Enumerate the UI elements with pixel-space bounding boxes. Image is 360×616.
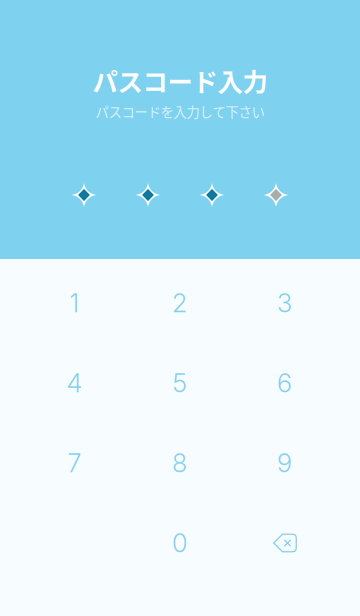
staticText: パスコード入力	[92, 62, 267, 99]
staticText: 4	[66, 368, 82, 398]
button[interactable]: 7	[22, 423, 127, 503]
staticText: 0	[172, 528, 187, 558]
button[interactable]: 4	[22, 343, 127, 423]
button[interactable]: 3	[232, 263, 337, 343]
button[interactable]: 6	[232, 343, 337, 423]
staticText: 2	[172, 288, 187, 318]
staticText: 5	[172, 368, 186, 398]
button[interactable]: 9	[232, 423, 337, 503]
staticText: 1	[69, 288, 79, 318]
button[interactable]: Delete	[232, 503, 337, 583]
button[interactable]: 0	[127, 503, 232, 583]
staticText: パスコードを入力して下さい	[95, 102, 264, 121]
staticText: 6	[277, 368, 292, 398]
staticText: 7	[67, 448, 81, 478]
button[interactable]: 1	[22, 263, 127, 343]
staticText: 9	[277, 448, 292, 478]
staticText: 8	[172, 448, 187, 478]
staticText: 3	[277, 288, 292, 318]
button[interactable]: 5	[127, 343, 232, 423]
button[interactable]: 2	[127, 263, 232, 343]
button[interactable]: 8	[127, 423, 232, 503]
